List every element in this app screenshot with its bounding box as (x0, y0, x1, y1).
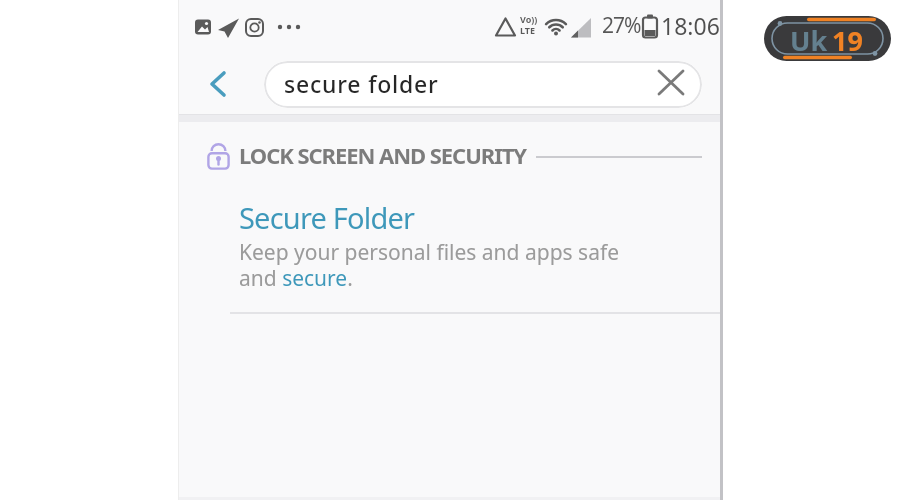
staticText: 27% (602, 11, 641, 40)
button[interactable] (196, 63, 238, 105)
staticText: LTE (520, 24, 536, 36)
staticText: secure folder (284, 68, 439, 99)
staticText: 18:06 (661, 10, 720, 41)
staticText: Keep your personal files and apps safe a… (239, 238, 620, 293)
staticText: LOCK SCREEN AND SECURITY (239, 140, 527, 170)
staticText: Uk (790, 22, 828, 59)
button[interactable]: secure folder (264, 61, 702, 108)
staticText: Secure Folder (239, 198, 415, 237)
button[interactable] (656, 68, 686, 98)
staticText: 19 (832, 22, 863, 59)
button[interactable]: Secure Folder (218, 192, 698, 302)
button[interactable]: Uk (764, 16, 891, 61)
staticText: Vo)) (520, 13, 538, 25)
